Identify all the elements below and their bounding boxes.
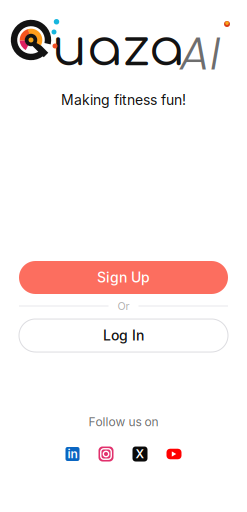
staticText: Follow us on [88,415,158,429]
staticText: Making fitness fun! [61,91,186,108]
staticText: X [135,447,144,461]
button[interactable]: Log In [19,319,228,352]
staticText: AI [180,22,220,85]
staticText: Sign Up [97,269,150,286]
staticText: in [67,447,77,461]
button[interactable]: YouTube [166,449,181,459]
staticText: Log In [103,327,144,344]
staticText: uaza [52,20,184,77]
button[interactable]: LinkedIn [65,447,79,461]
button[interactable]: Instagram [98,446,113,461]
button[interactable]: Sign Up [19,261,228,294]
button[interactable]: X [132,446,147,461]
staticText: Or [117,299,129,312]
